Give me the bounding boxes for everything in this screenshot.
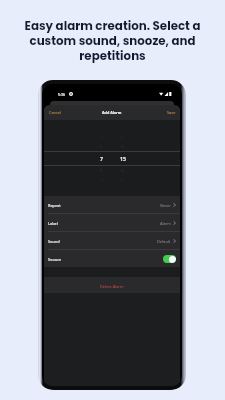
staticText: Snooze (48, 257, 62, 262)
staticText: 8 (100, 168, 103, 173)
staticText: Repeat (48, 203, 61, 208)
staticText: Easy alarm creation. Select a custom sou… (12, 18, 213, 64)
staticText: 7 (100, 155, 103, 162)
staticText: 5:36 (58, 92, 66, 97)
staticText: Delete Alarm (100, 284, 124, 289)
button[interactable]: Label (44, 214, 180, 232)
staticText: 15 (120, 155, 126, 162)
button[interactable]: Snooze (44, 250, 180, 267)
staticText: Add Alarm (102, 110, 122, 115)
button[interactable]: Repeat (44, 196, 180, 214)
staticText: 16 (120, 168, 125, 173)
staticText: Cancel (49, 110, 61, 115)
staticText: Save (167, 110, 176, 115)
staticText: 6 (100, 144, 103, 149)
staticText: Alarm (160, 221, 171, 226)
staticText: Sound (48, 239, 60, 244)
staticText: 14 (120, 144, 125, 149)
button[interactable]: Sound (44, 232, 180, 250)
button[interactable]: Save (163, 106, 180, 119)
staticText: Default (157, 239, 171, 244)
staticText: Label (48, 221, 58, 226)
button[interactable]: Delete Alarm (44, 277, 180, 293)
button[interactable]: Cancel (44, 106, 65, 119)
staticText: Never (160, 203, 171, 208)
